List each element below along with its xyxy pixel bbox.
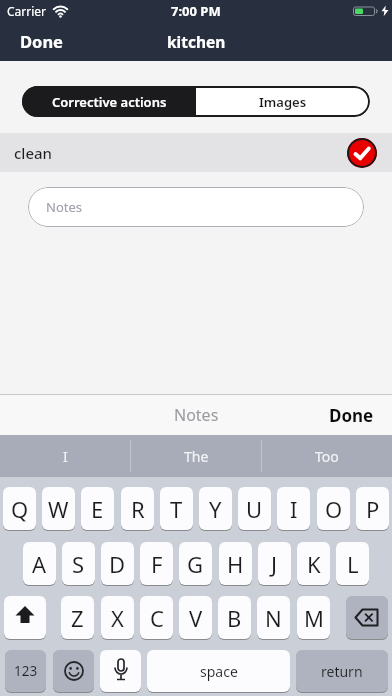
button[interactable]: Y <box>199 487 232 530</box>
staticText: Images <box>259 93 307 111</box>
staticText: P <box>366 494 380 524</box>
staticText: Corrective actions <box>52 93 167 111</box>
button[interactable]: C <box>140 596 173 639</box>
staticText: 7:00 PM <box>171 2 221 20</box>
button[interactable]: E <box>81 487 114 530</box>
button[interactable]: U <box>238 487 271 530</box>
button[interactable]: R <box>121 487 154 530</box>
staticText: H <box>227 549 244 579</box>
staticText: C <box>150 603 164 633</box>
staticText: clean <box>14 143 53 163</box>
staticText: 123 <box>14 662 38 680</box>
button[interactable]: A <box>23 542 56 585</box>
button[interactable] <box>100 650 141 692</box>
button[interactable]: 123 <box>5 650 46 692</box>
button[interactable]: W <box>42 487 75 530</box>
staticText: kitchen <box>167 31 226 52</box>
button[interactable]: Done <box>20 30 63 52</box>
staticText: L <box>347 549 359 579</box>
button[interactable]: Notes <box>28 187 364 227</box>
button[interactable]: G <box>179 542 212 585</box>
button[interactable]: The <box>131 435 261 477</box>
staticText: W <box>48 494 69 524</box>
button[interactable]: P <box>356 487 389 530</box>
staticText: J <box>271 549 278 579</box>
button[interactable]: Done <box>329 404 374 427</box>
button[interactable]: D <box>101 542 134 585</box>
button[interactable]: B <box>218 596 251 639</box>
button[interactable]: X <box>101 596 134 639</box>
button[interactable] <box>347 138 377 168</box>
staticText: Y <box>209 494 222 524</box>
staticText: X <box>111 603 124 633</box>
staticText: I <box>63 447 68 466</box>
staticText: space <box>200 662 238 681</box>
staticText: Notes <box>174 404 219 426</box>
staticText: The <box>184 447 209 466</box>
staticText: Z <box>71 603 84 633</box>
staticText: O <box>325 494 343 524</box>
staticText: B <box>227 603 242 633</box>
button[interactable]: Q <box>3 487 36 530</box>
button[interactable]: F <box>140 542 173 585</box>
staticText: Q <box>11 494 29 524</box>
button[interactable]: V <box>179 596 212 639</box>
staticText: return <box>321 662 363 681</box>
staticText: S <box>72 549 85 579</box>
staticText: D <box>109 549 126 579</box>
button[interactable]: J <box>258 542 291 585</box>
button[interactable]: Z <box>61 596 94 639</box>
button[interactable]: S <box>62 542 95 585</box>
button[interactable]: H <box>219 542 252 585</box>
staticText: N <box>265 603 282 633</box>
button[interactable]: Corrective actions <box>22 86 196 117</box>
button[interactable]: Images <box>196 86 370 117</box>
staticText: U <box>246 494 263 524</box>
staticText: I <box>290 494 298 524</box>
staticText: Too <box>315 447 339 466</box>
button[interactable]: L <box>336 542 369 585</box>
button[interactable] <box>4 596 46 639</box>
staticText: K <box>307 549 321 579</box>
button[interactable] <box>346 596 388 639</box>
staticText: Carrier <box>7 3 47 19</box>
staticText: V <box>189 603 203 633</box>
button[interactable]: M <box>297 596 330 639</box>
button[interactable]: N <box>257 596 290 639</box>
button[interactable]: return <box>296 650 388 692</box>
button[interactable] <box>53 650 94 692</box>
button[interactable]: K <box>297 542 330 585</box>
button[interactable]: T <box>160 487 193 530</box>
staticText: M <box>304 603 324 633</box>
staticText: F <box>151 549 163 579</box>
staticText: Notes <box>46 198 82 216</box>
staticText: T <box>170 494 183 524</box>
button[interactable]: space <box>147 650 290 692</box>
staticText: A <box>32 549 47 579</box>
staticText: E <box>91 494 104 524</box>
button[interactable]: I <box>277 487 310 530</box>
button[interactable]: Too <box>262 435 392 477</box>
button[interactable]: O <box>317 487 350 530</box>
staticText: G <box>187 549 204 579</box>
staticText: R <box>131 494 145 524</box>
button[interactable]: I <box>0 435 130 477</box>
